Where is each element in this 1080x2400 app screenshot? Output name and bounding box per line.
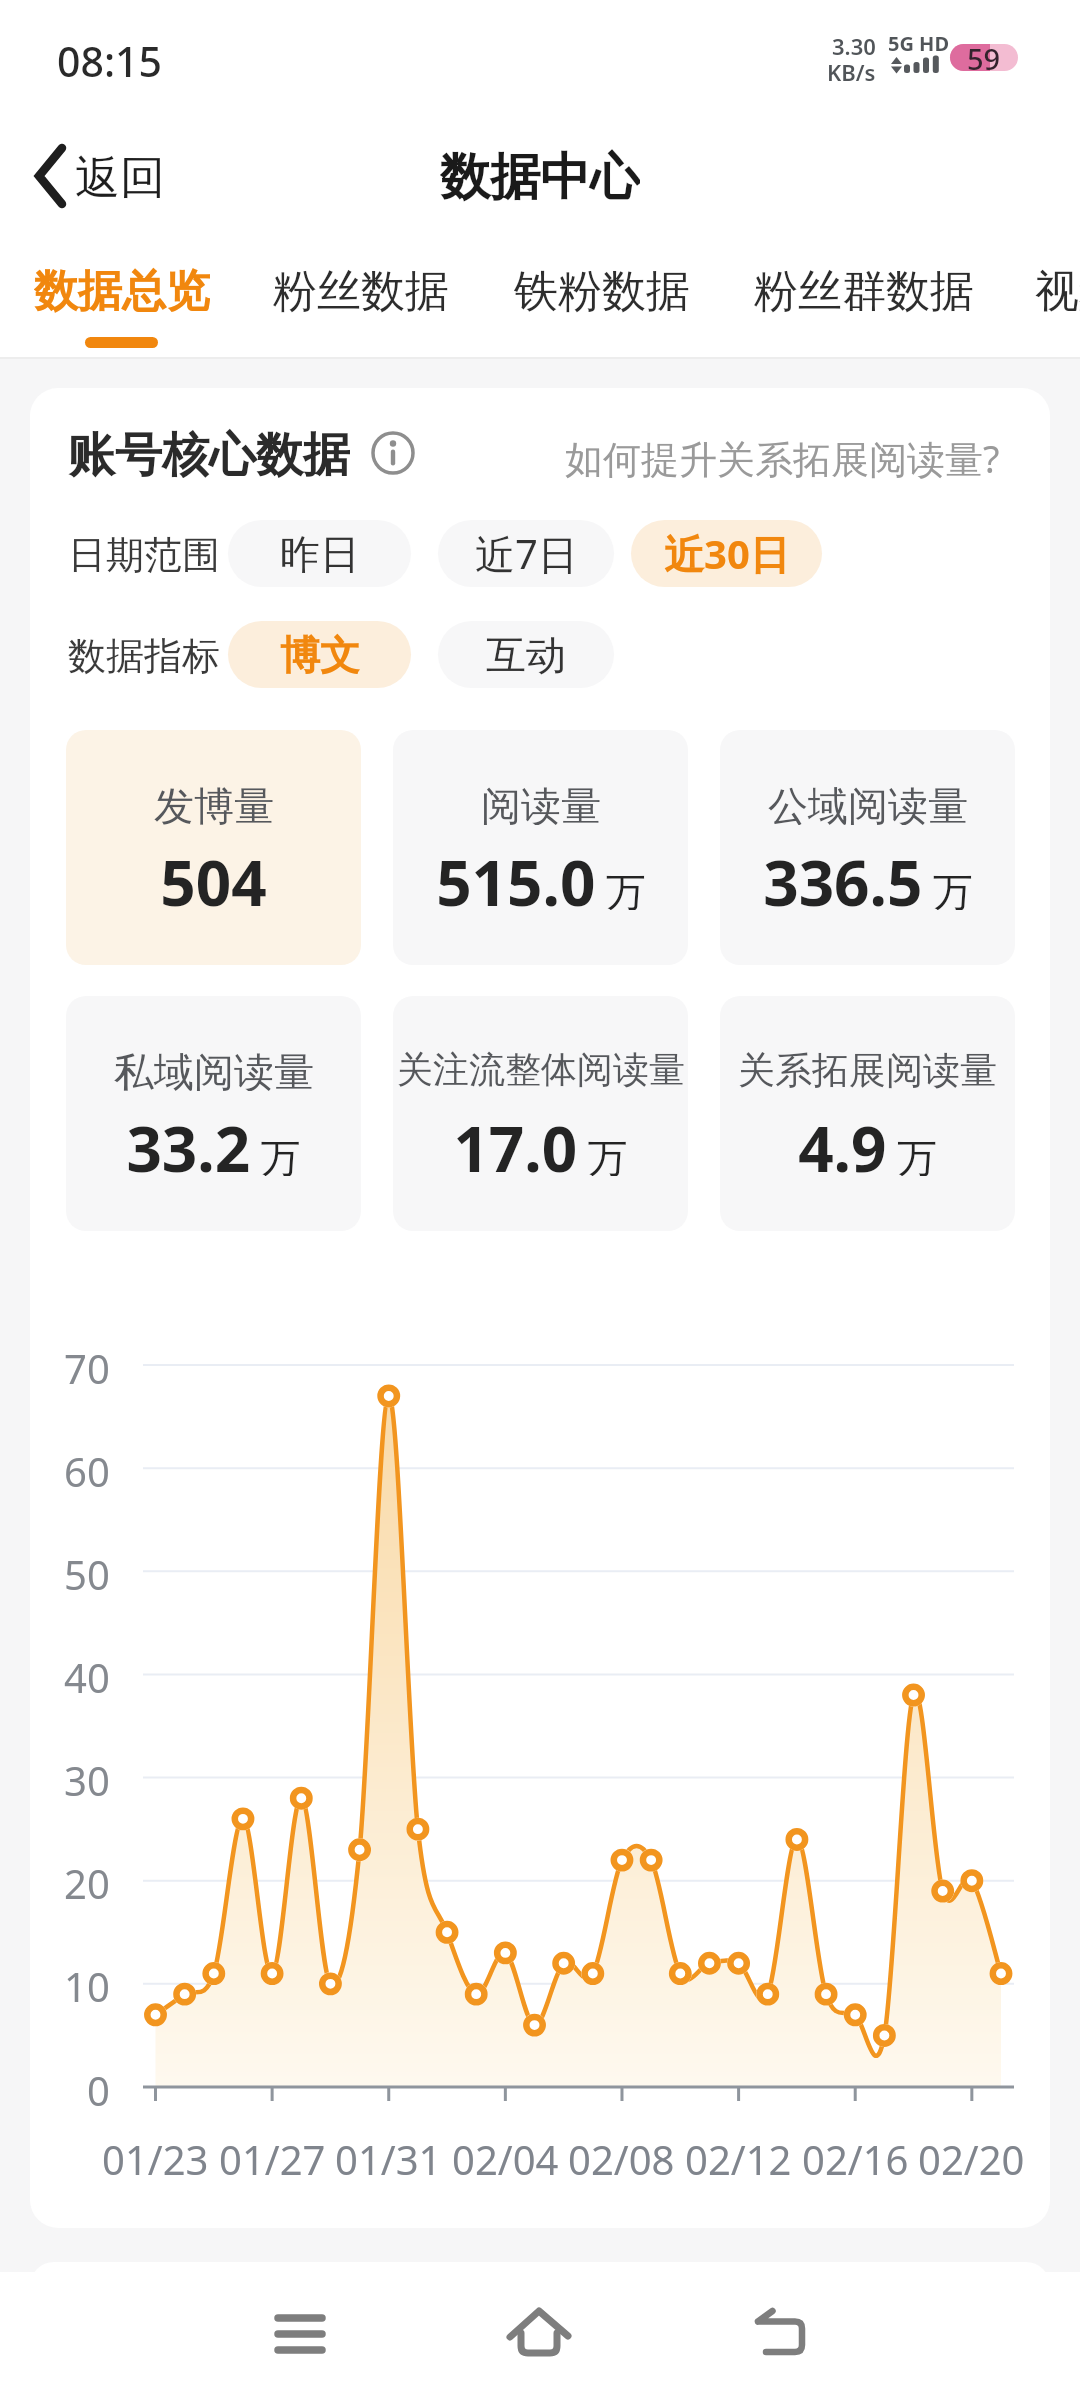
staticText: 数据指标 (68, 632, 220, 678)
button[interactable]: 昨日 (228, 520, 411, 587)
staticText: 阅读量 (481, 781, 601, 825)
button[interactable]: 私域阅读量 (66, 996, 361, 1231)
staticText: 关注流整体阅读量 (397, 1047, 685, 1091)
button[interactable]: 近30日 (631, 520, 822, 587)
staticText: 互动 (486, 630, 566, 680)
staticText: 关系拓展阅读量 (738, 1047, 997, 1091)
button[interactable]: 公域阅读量 (720, 730, 1015, 965)
button[interactable] (371, 431, 415, 475)
button[interactable] (740, 2300, 820, 2370)
staticText: KB/s (827, 57, 876, 83)
staticText: 3.30 (832, 31, 876, 57)
staticText: 60 (64, 1444, 110, 1492)
staticText: 504 (160, 840, 267, 910)
staticText: 数据中心 (440, 146, 640, 208)
staticText: 33.2 万 (126, 1106, 301, 1176)
staticText: 4.9 万 (798, 1106, 937, 1176)
button[interactable]: 关注流整体阅读量 (393, 996, 688, 1231)
button[interactable]: 近7日 (438, 520, 614, 587)
staticText: 02/16 (802, 2132, 909, 2180)
button[interactable]: 互动 (438, 621, 614, 688)
staticText: 02/04 (452, 2132, 559, 2180)
staticText: 昨日 (280, 529, 360, 579)
staticText: 17.0 万 (453, 1106, 628, 1176)
button[interactable]: 发博量 (66, 730, 361, 965)
staticText: 日期范围 (68, 531, 220, 577)
button[interactable]: 博文 (228, 621, 411, 688)
staticText: 70 (64, 1341, 110, 1389)
staticText: 02/12 (685, 2132, 792, 2180)
staticText: 近30日 (664, 526, 790, 581)
button[interactable]: 粉丝群数据 (753, 264, 975, 316)
staticText: 01/23 (102, 2132, 209, 2180)
button[interactable]: 铁粉数据 (513, 264, 691, 316)
button[interactable]: 粉丝数据 (272, 264, 450, 316)
staticText: 数据总览 (34, 264, 210, 316)
staticText: 10 (64, 1959, 110, 2007)
button[interactable] (260, 2300, 340, 2370)
staticText: 20 (64, 1856, 110, 1904)
button[interactable]: 数据总览 (33, 264, 211, 316)
staticText: 粉丝数据 (273, 264, 449, 316)
staticText: 博文 (280, 630, 360, 680)
staticText: 0 (87, 2063, 110, 2111)
button[interactable]: 返回 (75, 150, 185, 206)
staticText: 515.0 万 (436, 840, 646, 910)
staticText: 返回 (75, 150, 165, 206)
staticText: 公域阅读量 (768, 781, 968, 825)
staticText: 50 (64, 1547, 110, 1595)
staticText: 发博量 (154, 781, 274, 825)
staticText: 08:15 (57, 33, 162, 81)
button[interactable] (36, 145, 66, 207)
staticText: 40 (64, 1650, 110, 1698)
staticText: 30 (64, 1753, 110, 1801)
staticText: 02/20 (918, 2132, 1025, 2180)
staticText: 如何提升关系拓展阅读量? (565, 432, 1000, 480)
staticText: 02/08 (568, 2132, 675, 2180)
staticText: 账号核心数据 (68, 426, 350, 478)
button[interactable]: 如何提升关系拓展阅读量? (540, 432, 1000, 480)
staticText: 5G HD (888, 30, 950, 54)
staticText: 视频数据 (1035, 264, 1080, 316)
staticText: 336.5 万 (763, 840, 973, 910)
button[interactable]: 视频数据 (1035, 264, 1080, 316)
staticText: 铁粉数据 (514, 264, 690, 316)
button[interactable]: 阅读量 (393, 730, 688, 965)
staticText: 私域阅读量 (114, 1047, 314, 1091)
staticText: 01/27 (219, 2132, 326, 2180)
button[interactable] (500, 2300, 580, 2370)
staticText: 01/31 (335, 2132, 442, 2180)
staticText: 近7日 (475, 526, 578, 581)
staticText: 59 (967, 39, 1001, 78)
staticText: 粉丝群数据 (754, 264, 974, 316)
button[interactable]: 关系拓展阅读量 (720, 996, 1015, 1231)
